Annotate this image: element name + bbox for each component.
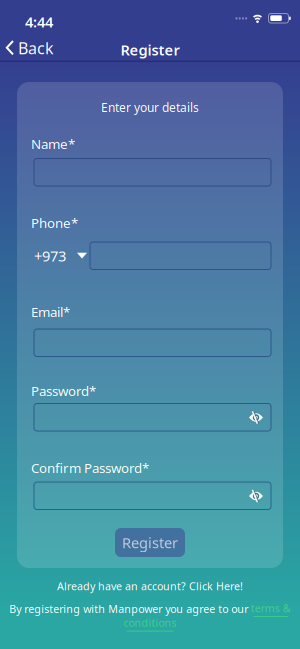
button[interactable]: Show password — [249, 411, 263, 423]
staticText: 4:44 — [25, 12, 53, 31]
button[interactable]: Confirm password — [34, 482, 271, 509]
staticText: Phone* — [31, 214, 78, 232]
staticText: Already have an account? Click Here! — [57, 579, 243, 593]
staticText: Back — [18, 37, 54, 59]
button[interactable]: Name — [34, 158, 271, 186]
button[interactable]: Email — [34, 329, 271, 356]
staticText: terms & — [251, 601, 291, 615]
staticText: Password* — [31, 382, 96, 400]
button[interactable]: Back — [6, 40, 54, 56]
button[interactable]: Show confirm password — [249, 490, 263, 502]
button[interactable]: Password — [34, 403, 271, 431]
staticText: +973 — [34, 246, 66, 265]
button[interactable]: terms & — [251, 601, 291, 617]
button[interactable]: Register — [115, 528, 185, 557]
button[interactable]: Country code +973 — [34, 242, 87, 269]
staticText: By registering with Manpower you agree t… — [9, 602, 248, 616]
button[interactable]: conditions — [123, 615, 176, 631]
staticText: Register — [120, 40, 179, 59]
staticText: Register — [122, 533, 178, 552]
staticText: Confirm Password* — [31, 459, 149, 477]
staticText: Name* — [31, 135, 75, 153]
button[interactable]: Already have an account? Click Here! — [57, 579, 243, 593]
staticText: Enter your details — [101, 99, 199, 115]
button[interactable]: Phone number — [90, 242, 271, 269]
staticText: Email* — [31, 303, 70, 321]
staticText: conditions — [123, 615, 176, 630]
